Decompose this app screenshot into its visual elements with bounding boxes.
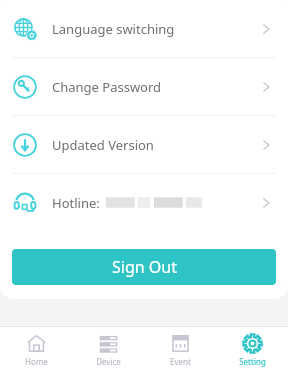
button[interactable]: Setting — [216, 327, 288, 372]
button[interactable]: Updated Version — [0, 116, 288, 173]
button[interactable]: Device — [72, 327, 144, 372]
button[interactable]: Change Password — [0, 58, 288, 115]
button[interactable]: Sign Out — [12, 249, 276, 285]
other: Open — [258, 137, 274, 153]
staticText: Home — [25, 356, 48, 367]
button[interactable]: Event — [144, 327, 216, 372]
staticText: Language switching — [52, 20, 175, 38]
button[interactable]: Language switching — [0, 0, 288, 57]
staticText: Setting — [239, 356, 266, 367]
staticText: Change Password — [52, 78, 162, 96]
other: Open — [258, 79, 274, 95]
staticText: Sign Out — [112, 256, 177, 278]
button[interactable]: Hotline: — [0, 174, 288, 231]
other: Open — [258, 195, 274, 211]
button[interactable]: Home — [0, 327, 72, 372]
staticText: Hotline: — [52, 194, 100, 212]
staticText: Device — [96, 356, 121, 367]
staticText: Event — [170, 356, 191, 367]
other: Open — [258, 21, 274, 37]
staticText: Updated Version — [52, 136, 154, 154]
